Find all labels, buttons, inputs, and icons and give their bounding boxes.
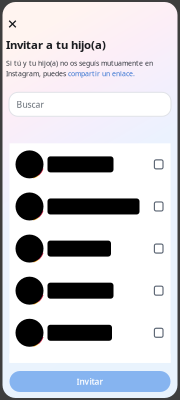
button[interactable]: [9, 227, 170, 270]
button[interactable]: Cerrar: [2, 15, 22, 33]
button[interactable]: compartir un enlace.: [68, 69, 135, 78]
button[interactable]: [9, 185, 170, 227]
staticText: Instagram, puedes: [6, 69, 68, 78]
button[interactable]: [9, 143, 170, 185]
button[interactable]: Buscar: [9, 92, 171, 116]
button[interactable]: [9, 270, 170, 312]
staticText: Si tú y tu hijo(a) no os seguís mutuamen…: [6, 58, 153, 68]
staticText: compartir un enlace.: [68, 69, 135, 78]
staticText: Invitar: [76, 376, 103, 387]
staticText: Buscar: [16, 98, 44, 110]
staticText: Invitar a tu hijo(a): [6, 37, 106, 52]
button[interactable]: [9, 312, 170, 354]
button[interactable]: Invitar: [9, 371, 170, 392]
